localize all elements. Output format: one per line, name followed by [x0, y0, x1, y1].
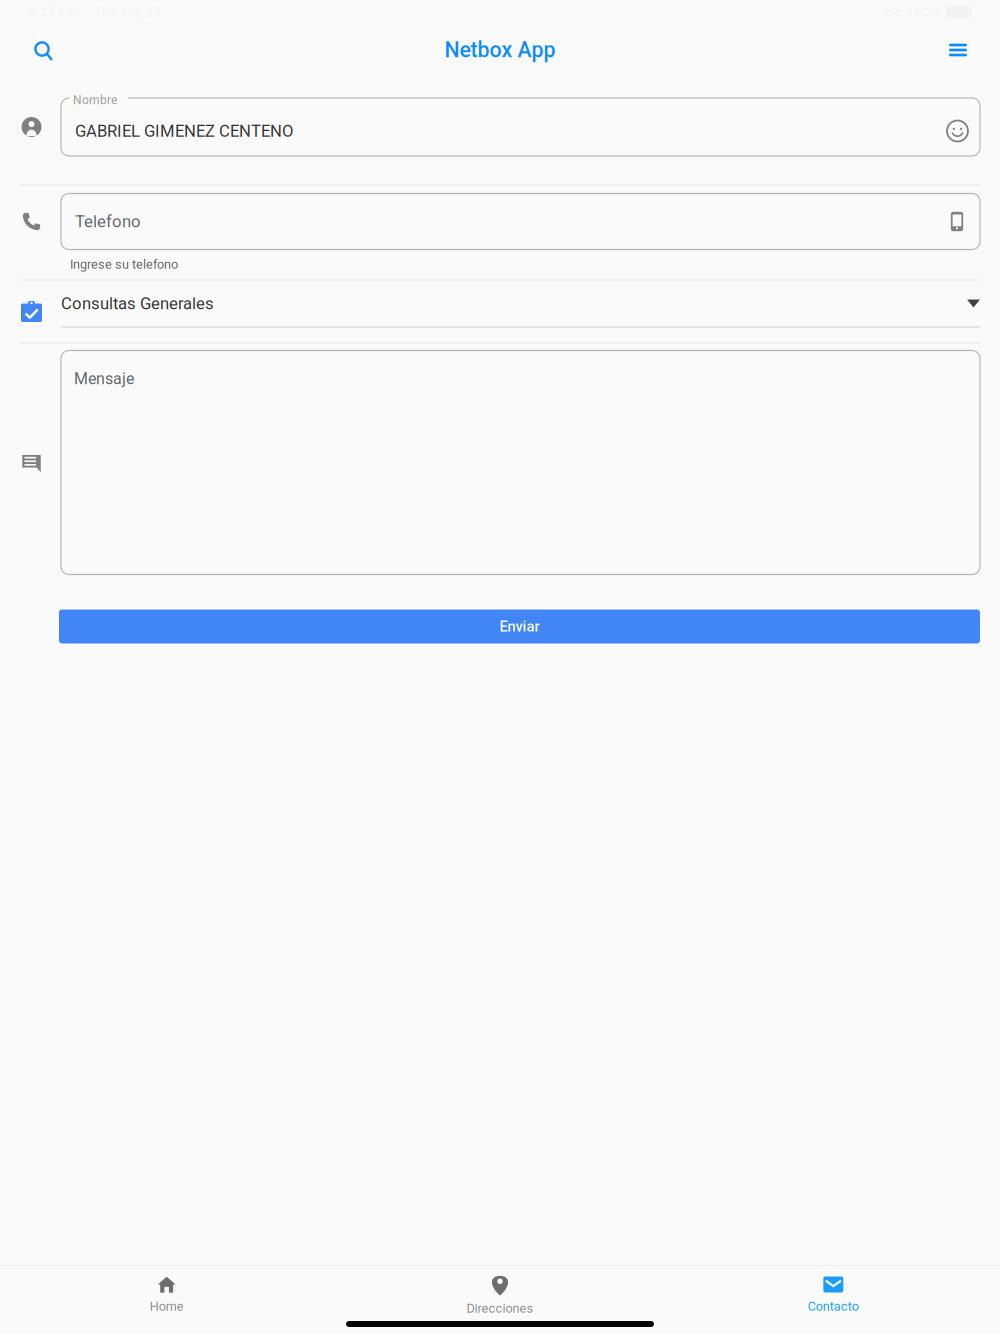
staticText: Nombre	[73, 93, 117, 107]
staticText: Telefono	[75, 212, 141, 231]
staticText: Mensaje	[74, 369, 134, 388]
staticText: Ingrese su telefono	[70, 257, 178, 272]
staticText: Contacto	[808, 1299, 859, 1314]
staticText: Netbox App	[444, 37, 555, 62]
staticText: GABRIEL GIMENEZ CENTENO	[75, 121, 293, 141]
button[interactable]: Menu	[932, 24, 984, 76]
button[interactable]: Consultas Generales	[0, 280, 1000, 342]
button[interactable]: Contacto	[667, 1266, 1000, 1321]
button[interactable]: Enviar	[59, 609, 980, 643]
staticText: Consultas Generales	[61, 294, 214, 313]
button[interactable]: Direcciones	[333, 1266, 667, 1321]
staticText: Home	[150, 1299, 184, 1314]
button[interactable]: Home	[0, 1266, 333, 1321]
staticText: Enviar	[499, 618, 539, 635]
button[interactable]: Search	[16, 24, 68, 76]
staticText: Direcciones	[466, 1301, 533, 1316]
